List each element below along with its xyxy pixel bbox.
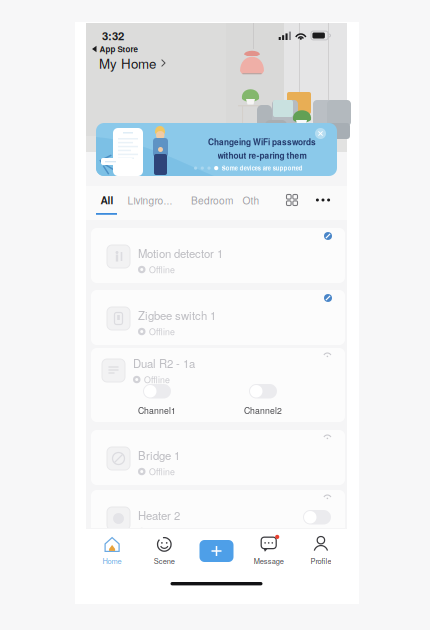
staticText: Bedroom: [191, 193, 233, 207]
staticText: 3:32: [102, 27, 124, 44]
staticText: Profile: [310, 555, 331, 566]
staticText: Livingro...: [127, 193, 172, 207]
button[interactable]: Bridge 1: [86, 430, 345, 485]
staticText: Motion detector 1: [138, 245, 223, 261]
staticText: Offline: [149, 325, 175, 338]
button[interactable]: My Home: [99, 55, 166, 71]
staticText: Offline: [144, 373, 170, 386]
button[interactable]: Bedroom: [186, 186, 238, 214]
staticText: Changeing WiFi passwords: [208, 136, 316, 148]
staticText: All: [100, 193, 113, 207]
button[interactable]: Livingro...: [124, 186, 176, 214]
button[interactable]: Oth: [238, 186, 264, 214]
button[interactable]: App Store: [92, 43, 137, 55]
button[interactable]: Heater 2: [86, 490, 345, 545]
button[interactable]: Zigbee switch 1: [86, 290, 345, 345]
button[interactable]: Home: [86, 532, 138, 570]
staticText: Bridge 1: [138, 447, 180, 463]
staticText: without re-paring them: [217, 149, 306, 161]
staticText: Heater 2: [138, 507, 180, 523]
button[interactable]: Motion detector 1: [86, 228, 345, 283]
button[interactable]: Grid view: [280, 186, 304, 214]
button[interactable]: All: [94, 186, 120, 214]
staticText: Channel1: [138, 404, 176, 416]
staticText: Message: [254, 555, 284, 566]
button[interactable]: Dual R2 - 1a: [86, 348, 345, 422]
staticText: Offline: [149, 465, 175, 478]
staticText: Oth: [242, 193, 259, 207]
staticText: My Home: [99, 53, 156, 73]
staticText: Channel2: [244, 404, 282, 416]
button[interactable]: Profile: [295, 532, 347, 570]
staticText: Offline: [149, 525, 175, 538]
button[interactable]: Scene: [138, 532, 190, 570]
staticText: Some devices are supported: [222, 164, 303, 172]
staticText: Zigbee switch 1: [138, 307, 216, 323]
staticText: Offline: [149, 263, 175, 276]
staticText: Scene: [154, 555, 175, 566]
button[interactable]: More: [310, 186, 336, 214]
button[interactable]: Close banner: [313, 126, 328, 141]
button[interactable]: Message: [243, 532, 295, 570]
button[interactable]: Add: [190, 532, 243, 570]
button[interactable]: Changeing WiFi passwords: [96, 123, 337, 176]
staticText: Dual R2 - 1a: [133, 355, 195, 371]
staticText: Home: [103, 555, 122, 566]
staticText: App Store: [99, 43, 137, 55]
